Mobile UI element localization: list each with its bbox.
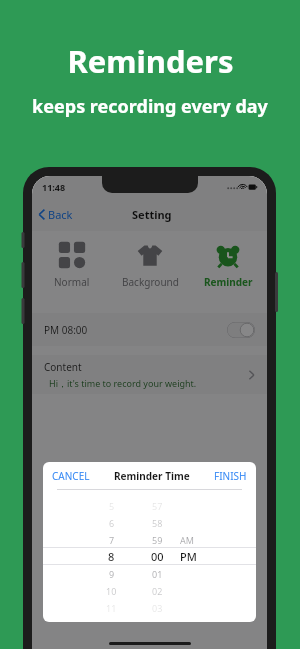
- button[interactable]: PM 08:00: [32, 313, 267, 346]
- button[interactable]: Background: [111, 231, 189, 304]
- button[interactable]: Content: [32, 355, 267, 394]
- staticText: Reminder: [204, 275, 253, 289]
- button[interactable]: Normal: [32, 231, 111, 304]
- button[interactable]: Back: [32, 203, 81, 226]
- staticText: AM: [180, 534, 194, 546]
- staticText: 01: [152, 568, 163, 580]
- button[interactable]: Reminder: [189, 231, 267, 304]
- staticText: Back: [48, 207, 73, 222]
- staticText: PM 08:00: [44, 323, 88, 337]
- staticText: Reminder Time: [114, 469, 190, 483]
- button[interactable]: FINISH: [208, 465, 256, 487]
- staticText: keeps recording every day: [32, 94, 268, 119]
- staticText: Reminders: [67, 40, 234, 82]
- staticText: 03: [152, 602, 163, 614]
- staticText: Hi，it's time to record your weight.: [49, 377, 197, 389]
- staticText: 9: [109, 568, 115, 580]
- staticText: 5: [109, 500, 115, 512]
- staticText: 8: [108, 549, 115, 564]
- staticText: 57: [152, 500, 163, 512]
- staticText: FINISH: [214, 469, 247, 483]
- staticText: Background: [122, 275, 179, 289]
- staticText: 11:48: [42, 181, 66, 193]
- button[interactable]: Toggle reminder: [227, 322, 255, 338]
- staticText: PM: [180, 549, 197, 564]
- staticText: 10: [106, 585, 117, 597]
- button[interactable]: 57: [134, 490, 180, 622]
- staticText: 11: [106, 602, 117, 614]
- staticText: 7: [109, 534, 115, 546]
- staticText: 02: [152, 585, 163, 597]
- button[interactable]: AM: [180, 490, 226, 622]
- staticText: Normal: [54, 275, 90, 289]
- staticText: Content: [44, 360, 82, 374]
- button[interactable]: CANCEL: [43, 465, 96, 487]
- staticText: 6: [109, 517, 115, 529]
- staticText: CANCEL: [52, 469, 90, 483]
- staticText: 58: [152, 517, 163, 529]
- button[interactable]: 5: [89, 490, 134, 622]
- staticText: 00: [151, 549, 164, 564]
- staticText: 59: [152, 534, 163, 546]
- staticText: Setting: [132, 207, 172, 222]
